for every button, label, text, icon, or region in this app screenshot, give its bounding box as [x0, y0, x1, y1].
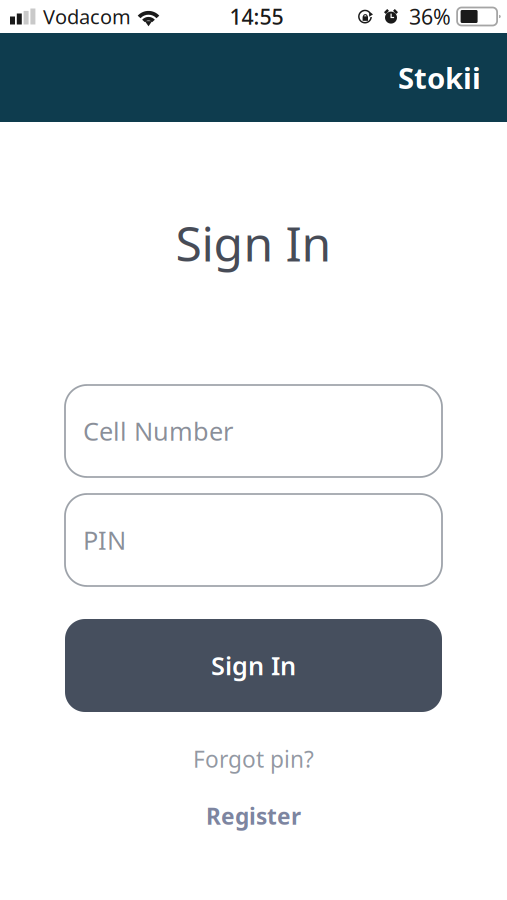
staticText: Stokii: [398, 58, 481, 97]
button[interactable]: PIN: [65, 494, 442, 586]
button[interactable]: Sign In: [65, 619, 442, 712]
staticText: Sign In: [211, 649, 296, 682]
staticText: Vodacom: [43, 3, 131, 30]
button[interactable]: Forgot pin?: [65, 742, 442, 776]
button[interactable]: Register: [65, 799, 442, 833]
staticText: Cell Number: [83, 414, 233, 448]
staticText: 14:55: [229, 2, 283, 31]
staticText: Register: [206, 801, 301, 831]
staticText: 36%: [409, 2, 451, 31]
staticText: Sign In: [175, 211, 331, 275]
staticText: PIN: [83, 523, 126, 557]
staticText: Forgot pin?: [193, 744, 314, 774]
button[interactable]: Cell Number: [65, 385, 442, 477]
